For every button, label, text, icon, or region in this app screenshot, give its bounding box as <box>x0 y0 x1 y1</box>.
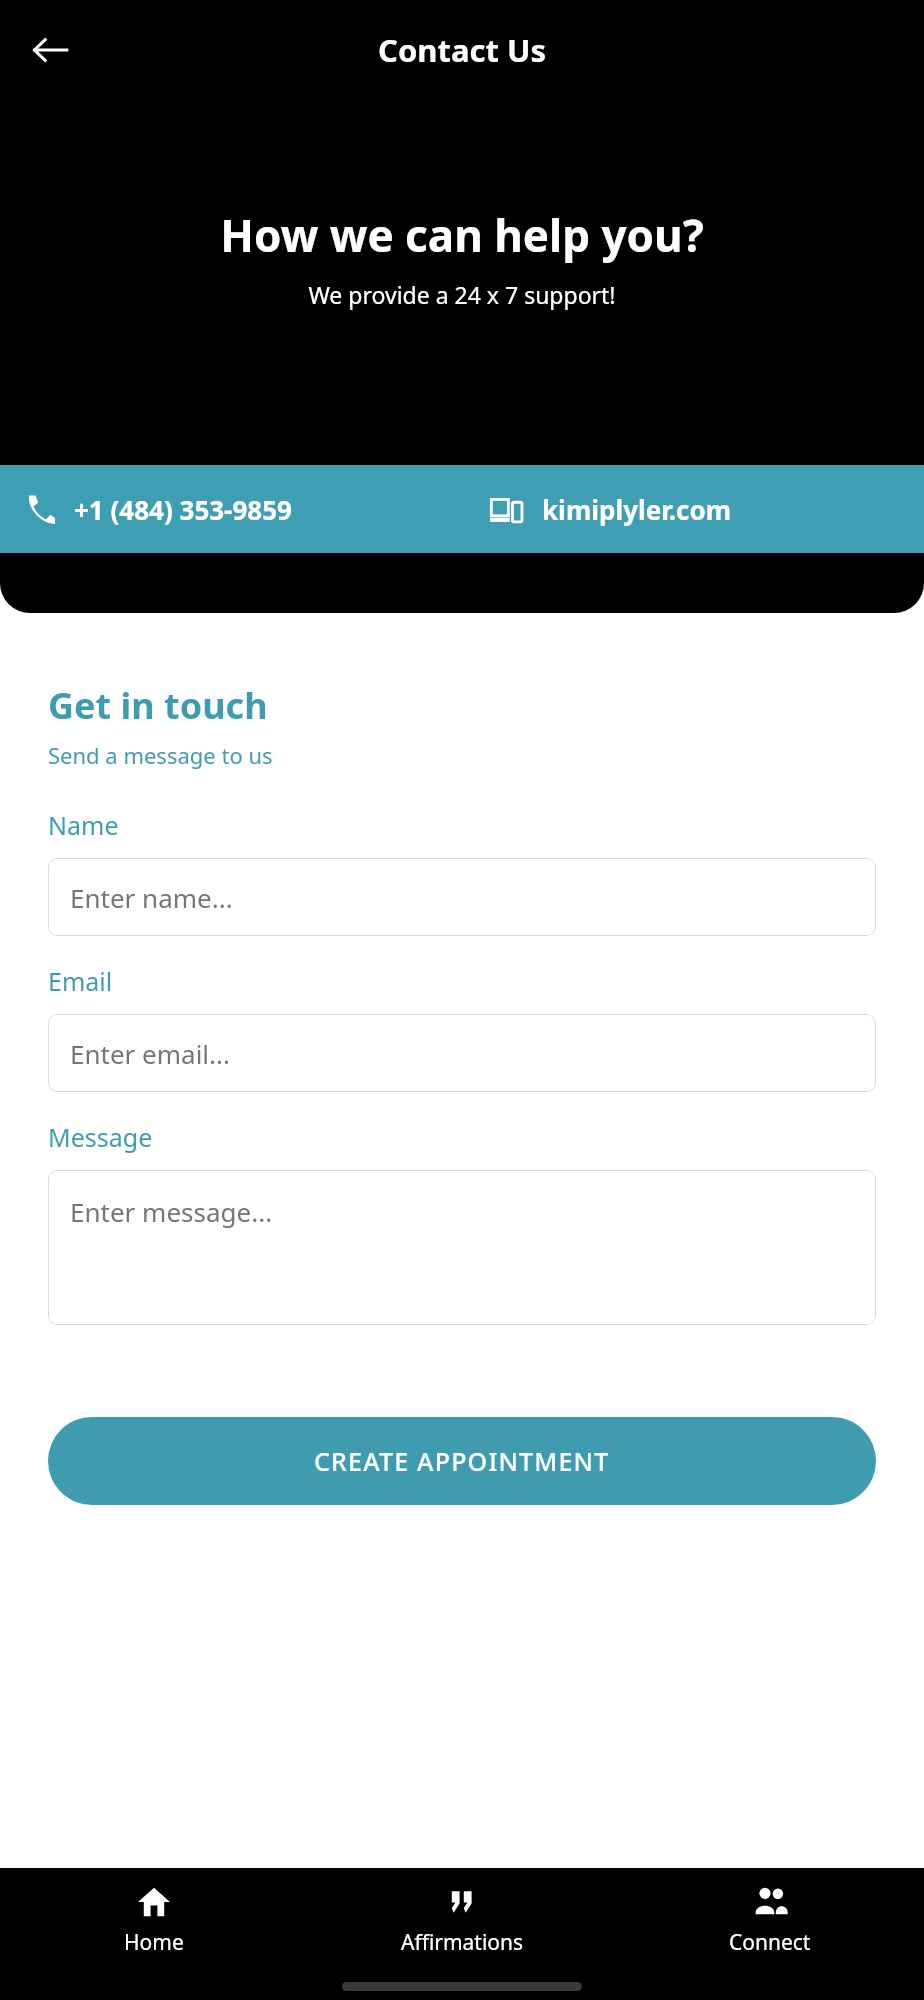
button[interactable]: Enter name... <box>48 858 876 936</box>
button[interactable]: +1 (484) 353-9859 <box>0 491 462 527</box>
staticText: Send a message to us <box>48 740 273 770</box>
staticText: +1 (484) 353-9859 <box>74 492 292 527</box>
staticText: Get in touch <box>48 681 268 730</box>
button[interactable]: kimiplyler.com <box>462 490 924 528</box>
staticText: Affirmations <box>401 1928 524 1957</box>
staticText: Email <box>48 964 113 998</box>
button[interactable]: Back <box>18 18 82 82</box>
staticText: kimiplyler.com <box>542 492 732 527</box>
staticText: Name <box>48 808 119 842</box>
staticText: How we can help you? <box>220 205 704 265</box>
button[interactable]: Enter message... <box>48 1170 876 1325</box>
button[interactable]: Affirmations <box>308 1874 616 1967</box>
button[interactable]: Connect <box>616 1874 924 1967</box>
staticText: Enter name... <box>70 880 233 915</box>
button[interactable]: Home <box>0 1874 308 1967</box>
button[interactable]: Enter email... <box>48 1014 876 1092</box>
staticText: Contact Us <box>378 29 546 71</box>
staticText: Connect <box>729 1928 811 1957</box>
button[interactable]: CREATE APPOINTMENT <box>48 1417 876 1505</box>
staticText: Home <box>124 1928 184 1957</box>
staticText: Message <box>48 1120 153 1154</box>
staticText: CREATE APPOINTMENT <box>314 1444 610 1478</box>
staticText: Enter message... <box>70 1194 273 1229</box>
staticText: Enter email... <box>70 1036 230 1071</box>
staticText: We provide a 24 x 7 support! <box>308 279 616 310</box>
